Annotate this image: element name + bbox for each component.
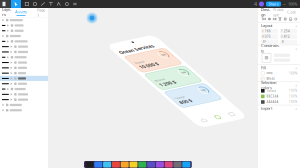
staticText: 1E1E1E (267, 89, 276, 92)
staticText: Y (281, 29, 283, 33)
button[interactable]: Share (266, 1, 281, 6)
button[interactable]: Align (267, 16, 272, 22)
button[interactable] (0, 44, 48, 49)
button[interactable]: App (156, 161, 164, 167)
staticText: 166 (265, 29, 271, 33)
staticText: Design (261, 7, 270, 17)
button[interactable]: 4A4A4A (258, 99, 300, 105)
button[interactable]: Main menu (0, 0, 11, 8)
staticText: Constraints (261, 43, 279, 53)
staticText: Code (287, 9, 296, 15)
button[interactable]: Assets (13, 9, 29, 16)
button[interactable]: Align (272, 16, 277, 22)
button[interactable] (0, 23, 48, 28)
button[interactable] (0, 17, 48, 23)
staticText: 812 (284, 35, 290, 38)
staticText: Export (261, 106, 272, 111)
button[interactable]: App (173, 161, 181, 167)
staticText: Fill (261, 65, 266, 70)
button[interactable]: App (147, 161, 155, 167)
button[interactable]: App (138, 161, 146, 167)
button[interactable]: 1E1E1E (258, 88, 300, 94)
button[interactable]: App (85, 161, 93, 167)
button[interactable]: FFFFFF (258, 71, 300, 76)
staticText: X (262, 29, 264, 33)
button[interactable] (0, 92, 48, 97)
button[interactable]: App (165, 161, 173, 167)
button[interactable] (0, 33, 48, 39)
button[interactable] (0, 97, 48, 102)
staticText: Page 1 (37, 7, 45, 18)
button[interactable] (0, 55, 48, 60)
staticText: Assets (15, 9, 27, 14)
staticText: Prototype (273, 7, 284, 17)
staticText: 100% (289, 100, 297, 104)
button[interactable] (0, 28, 48, 33)
staticText: + (295, 106, 297, 111)
button[interactable]: Tool (31, 0, 39, 8)
button[interactable] (0, 102, 48, 108)
staticText: Share (268, 1, 278, 7)
staticText: 375 (265, 35, 271, 38)
button[interactable]: Align (293, 16, 298, 22)
button[interactable] (0, 86, 48, 92)
staticText: 254 (284, 29, 290, 33)
staticText: 4 (254, 0, 257, 8)
staticText: Effects (266, 77, 274, 80)
staticText: 0 (282, 40, 284, 44)
staticText: 100% (289, 95, 297, 98)
staticText: Ocean Services (115, 65, 203, 81)
staticText: W (262, 35, 264, 38)
button[interactable]: Layers (0, 6, 13, 18)
button[interactable]: Prototype (273, 7, 284, 17)
staticText: 100% (289, 89, 297, 92)
button[interactable]: Align (277, 16, 283, 22)
button[interactable] (0, 60, 48, 65)
staticText: 8BC34A (267, 95, 279, 98)
staticText: H (281, 35, 283, 38)
staticText: Selection colors (261, 80, 276, 90)
staticText: + (295, 45, 297, 51)
button[interactable]: App (129, 161, 137, 167)
staticText: 100% (288, 1, 297, 7)
button[interactable]: App (103, 161, 111, 167)
button[interactable]: App (182, 161, 190, 167)
button[interactable]: Tool (23, 0, 31, 8)
button[interactable]: Tool (39, 0, 47, 8)
staticText: Balance (123, 161, 148, 168)
button[interactable]: App (94, 161, 102, 167)
staticText: + (295, 82, 297, 88)
button[interactable] (0, 65, 48, 70)
staticText: Layout (261, 23, 272, 28)
button[interactable]: Tool (55, 0, 63, 8)
button[interactable]: Tool (71, 0, 79, 8)
button[interactable]: Align (288, 16, 293, 22)
button[interactable] (0, 39, 48, 44)
button[interactable] (0, 49, 48, 55)
staticText: 0° (263, 40, 266, 44)
button[interactable] (0, 76, 48, 81)
button[interactable] (0, 108, 48, 113)
staticText: – (283, 0, 286, 8)
staticText: + (295, 65, 297, 70)
button[interactable]: App (112, 161, 120, 167)
button[interactable]: 8BC34A (258, 94, 300, 99)
button[interactable] (0, 70, 48, 76)
button[interactable]: Design (261, 7, 270, 17)
button[interactable]: Code (287, 9, 296, 15)
button[interactable]: Align (283, 16, 288, 22)
staticText: 100% (289, 72, 297, 75)
button[interactable]: App (121, 161, 129, 167)
staticText: + (295, 23, 297, 28)
button[interactable]: Effects (258, 76, 300, 81)
button[interactable]: Tool (63, 0, 71, 8)
staticText: 4A4A4A (267, 100, 279, 104)
button[interactable]: Align (261, 16, 267, 22)
staticText: 72% (196, 99, 207, 107)
button[interactable]: Tool (47, 0, 55, 8)
button[interactable] (0, 81, 48, 86)
button[interactable]: Move tool (11, 0, 21, 8)
